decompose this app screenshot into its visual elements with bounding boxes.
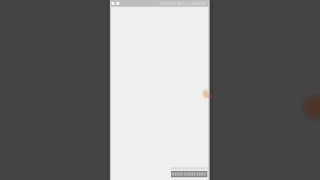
button[interactable]: Banner bbox=[170, 167, 207, 178]
